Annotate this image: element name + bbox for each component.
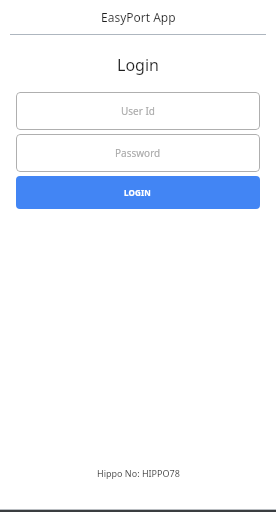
button[interactable]: LOGIN (16, 176, 260, 209)
staticText: User Id (121, 104, 156, 118)
button[interactable]: Password (16, 134, 260, 172)
staticText: EasyPort App (101, 9, 176, 25)
staticText: LOGIN (124, 187, 152, 198)
button[interactable]: User Id (16, 92, 260, 130)
staticText: Password (115, 146, 161, 160)
staticText: Hippo No: HIPPO78 (97, 467, 180, 479)
staticText: Login (117, 54, 159, 76)
